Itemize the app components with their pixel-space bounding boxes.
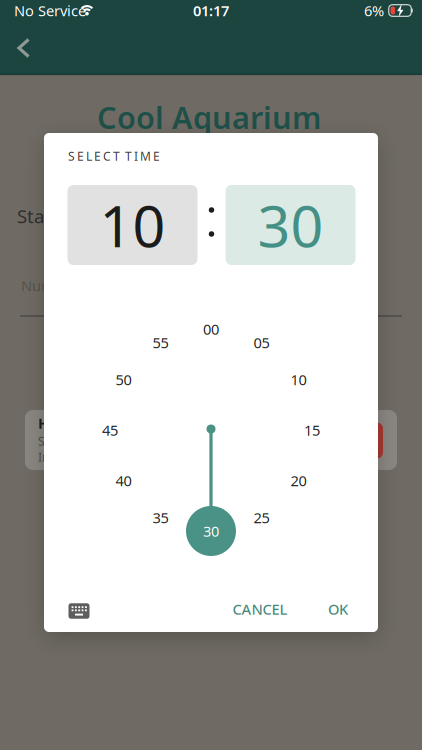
staticText: 10	[99, 187, 165, 263]
staticText: 15	[304, 420, 320, 440]
staticText: 05	[253, 333, 269, 352]
staticText: 25	[253, 508, 269, 527]
staticText: 20	[290, 471, 306, 490]
button[interactable]: 30	[225, 185, 355, 265]
button[interactable]	[59, 593, 99, 629]
staticText: S E L E C T T I M E	[68, 148, 160, 164]
staticText: 55	[152, 333, 168, 352]
staticText: No Service	[14, 1, 86, 20]
staticText: Number of	[21, 276, 96, 295]
staticText: 45	[102, 420, 118, 440]
staticText: Info	[38, 449, 60, 465]
staticText: 00	[203, 319, 219, 339]
staticText: 30	[203, 521, 219, 541]
staticText: Something	[38, 433, 98, 449]
staticText: 6%	[364, 1, 384, 20]
button[interactable]: OK	[313, 591, 363, 627]
staticText: 30	[257, 187, 323, 263]
staticText: 10	[290, 370, 306, 389]
staticText: 01:17	[193, 1, 229, 20]
button[interactable]	[7, 36, 41, 59]
staticText: 40	[115, 471, 131, 490]
staticText: Hello	[38, 413, 75, 433]
staticText: CANCEL	[232, 599, 287, 619]
staticText: Start Time	[17, 204, 107, 228]
staticText: 35	[152, 508, 168, 527]
button[interactable]: 10	[67, 185, 197, 265]
button[interactable]: CANCEL	[215, 591, 305, 627]
staticText: 50	[115, 370, 131, 389]
staticText: Cool Aquarium	[97, 97, 321, 137]
staticText: OK	[328, 599, 348, 619]
